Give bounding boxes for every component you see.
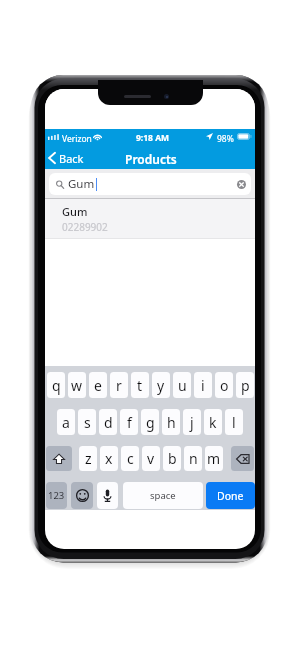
button[interactable]: Gum xyxy=(45,199,255,238)
staticText: Back xyxy=(59,151,84,166)
staticText: d xyxy=(104,413,113,432)
button[interactable]: g xyxy=(141,409,159,435)
button[interactable]: c xyxy=(121,446,139,471)
staticText: 9:18 AM xyxy=(136,132,170,144)
button[interactable]: p xyxy=(236,372,254,398)
button[interactable]: d xyxy=(99,409,117,435)
staticText: s xyxy=(84,413,91,432)
staticText: z xyxy=(85,449,92,468)
staticText: o xyxy=(220,376,229,395)
button[interactable]: a xyxy=(57,409,75,435)
staticText: h xyxy=(167,413,176,432)
staticText: 98% xyxy=(217,133,234,145)
staticText: i xyxy=(201,376,205,395)
button[interactable]: o xyxy=(215,372,233,398)
staticText: Verizon xyxy=(62,133,92,145)
staticText: w xyxy=(71,376,83,395)
button[interactable]: m xyxy=(205,446,223,471)
button[interactable]: f xyxy=(120,409,138,435)
staticText: u xyxy=(178,376,187,395)
staticText: p xyxy=(241,376,250,395)
staticText: Gum xyxy=(68,176,95,192)
button[interactable]: y xyxy=(152,372,170,398)
staticText: Products xyxy=(125,151,177,167)
button[interactable]: l xyxy=(225,409,243,435)
button[interactable]: z xyxy=(79,446,97,471)
button[interactable]: e xyxy=(89,372,107,398)
button[interactable]: 123 xyxy=(46,482,67,509)
button[interactable]: v xyxy=(142,446,160,471)
button[interactable]: x xyxy=(100,446,118,471)
button[interactable]: s xyxy=(78,409,96,435)
button[interactable]: w xyxy=(68,372,86,398)
button[interactable]: Gum xyxy=(49,173,251,195)
staticText: k xyxy=(209,413,217,432)
staticText: r xyxy=(116,376,122,395)
staticText: q xyxy=(52,376,61,395)
button[interactable]: Done xyxy=(206,482,255,509)
staticText: v xyxy=(147,449,155,468)
staticText: l xyxy=(232,413,236,432)
staticText: f xyxy=(127,413,132,432)
button[interactable]: b xyxy=(163,446,181,471)
button[interactable]: Emoji xyxy=(71,482,93,509)
staticText: b xyxy=(168,449,177,468)
staticText: 123 xyxy=(48,489,65,502)
staticText: a xyxy=(62,413,70,432)
staticText: j xyxy=(190,413,194,432)
staticText: Done xyxy=(217,489,244,503)
staticText: x xyxy=(105,449,113,468)
staticText: g xyxy=(146,413,155,432)
button[interactable]: t xyxy=(131,372,149,398)
staticText: y xyxy=(157,376,165,395)
staticText: Gum xyxy=(62,204,88,219)
button[interactable]: Backspace xyxy=(231,446,254,471)
button[interactable]: Clear text xyxy=(237,180,246,189)
staticText: space xyxy=(150,489,176,502)
button[interactable]: i xyxy=(194,372,212,398)
button[interactable]: k xyxy=(204,409,222,435)
staticText: c xyxy=(127,449,134,468)
staticText: m xyxy=(207,449,221,468)
button[interactable]: Shift xyxy=(46,446,72,471)
button[interactable]: h xyxy=(162,409,180,435)
staticText: t xyxy=(137,376,143,395)
button[interactable]: j xyxy=(183,409,201,435)
button[interactable]: Dictate xyxy=(97,482,118,509)
button[interactable]: Back xyxy=(45,148,91,168)
staticText: e xyxy=(94,376,102,395)
staticText: n xyxy=(189,449,198,468)
button[interactable]: r xyxy=(110,372,128,398)
button[interactable]: n xyxy=(184,446,202,471)
button[interactable]: space xyxy=(123,482,203,509)
button[interactable]: q xyxy=(47,372,65,398)
staticText: 02289902 xyxy=(62,220,108,234)
button[interactable]: u xyxy=(173,372,191,398)
